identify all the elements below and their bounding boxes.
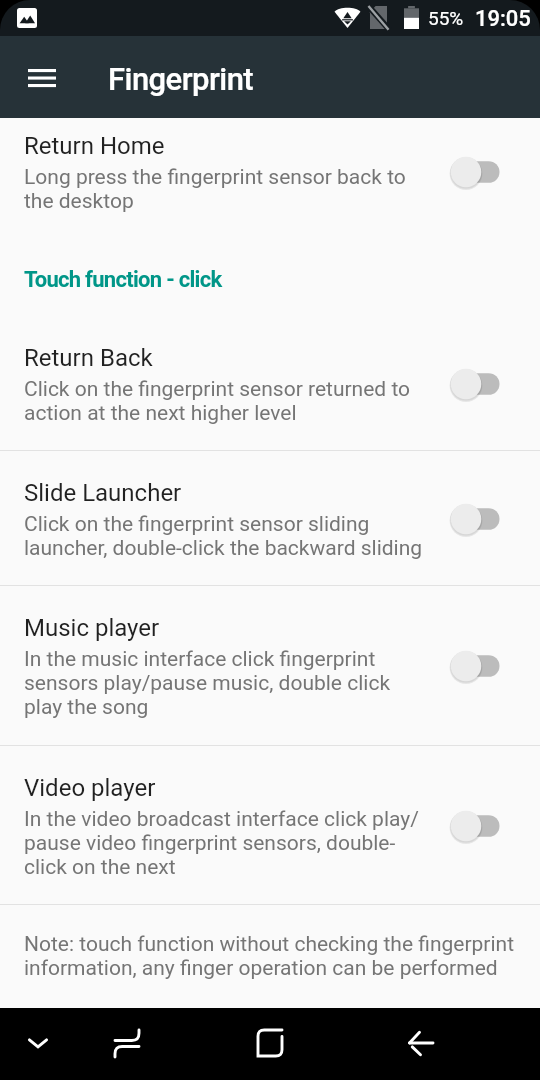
button[interactable]: Video player	[0, 760, 540, 891]
staticText: Return Back	[24, 344, 153, 372]
button[interactable]: Music player	[0, 600, 540, 731]
staticText: Return Home	[24, 132, 165, 160]
button[interactable]: Return Back	[0, 330, 540, 437]
staticText: Touch function - click	[24, 267, 222, 293]
button[interactable]: Return Home	[0, 118, 540, 225]
staticText: Click on the fingerprint sensor sliding …	[24, 512, 428, 560]
button[interactable]: Toggle Music player	[448, 648, 504, 684]
button[interactable]: Switch input method	[103, 1019, 151, 1067]
button[interactable]: Toggle Return Home	[448, 154, 504, 190]
staticText: Slide Launcher	[24, 479, 182, 507]
staticText: 19:05	[475, 6, 531, 32]
button[interactable]: Toggle Slide Launcher	[448, 501, 504, 537]
staticText: In the video broadcast interface click p…	[24, 807, 428, 879]
staticText: Long press the fingerprint sensor back t…	[24, 165, 428, 213]
button[interactable]: Hide keyboard	[14, 1019, 62, 1067]
staticText: In the music interface click fingerprint…	[24, 647, 428, 719]
button[interactable]: Open navigation menu	[18, 54, 66, 102]
staticText: 55%	[428, 7, 464, 29]
staticText: Video player	[24, 774, 156, 802]
button[interactable]: Slide Launcher	[0, 465, 540, 572]
staticText: Music player	[24, 614, 160, 642]
staticText: Fingerprint	[108, 61, 254, 97]
button[interactable]: Toggle Return Back	[448, 366, 504, 402]
button[interactable]: Back	[396, 1019, 444, 1067]
staticText: Note: touch function without checking th…	[24, 932, 524, 980]
button[interactable]: Toggle Video player	[448, 808, 504, 844]
button[interactable]: Home	[246, 1019, 294, 1067]
staticText: Click on the fingerprint sensor returned…	[24, 377, 428, 425]
